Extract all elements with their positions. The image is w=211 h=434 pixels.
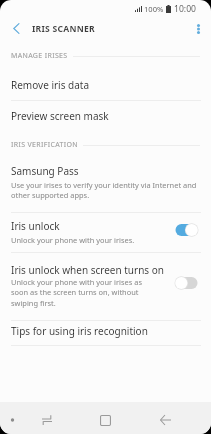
staticText: Preview screen mask: [11, 109, 109, 123]
staticText: MANAGE IRISES: [11, 51, 68, 61]
staticText: Unlock your phone with your irises as so…: [11, 277, 154, 309]
button[interactable]: Navigate up: [0, 16, 32, 41]
button[interactable]: Home: [78, 404, 133, 434]
button[interactable]: Samsung Pass: [0, 157, 211, 209]
staticText: Remove iris data: [11, 78, 90, 92]
staticText: Iris unlock when screen turns on: [11, 263, 164, 277]
button[interactable]: Remove iris data: [0, 70, 211, 100]
button[interactable]: Iris unlock: [0, 212, 211, 252]
staticText: Unlock your phone with your irises.: [11, 235, 135, 245]
staticText: IRIS SCANNER: [32, 23, 95, 35]
staticText: Use your irises to verify your identity …: [11, 180, 200, 201]
staticText: 100%: [144, 4, 164, 14]
button[interactable]: Iris unlock when screen turns on: [0, 252, 211, 320]
button[interactable]: Switch on: [174, 223, 199, 237]
staticText: Samsung Pass: [11, 164, 79, 178]
button[interactable]: Switch off: [174, 276, 199, 290]
button[interactable]: Back: [138, 404, 193, 434]
staticText: 10:00: [174, 3, 196, 15]
staticText: Tips for using iris recognition: [11, 324, 148, 338]
button[interactable]: More options: [185, 16, 211, 41]
button[interactable]: Tips for using iris recognition: [0, 320, 211, 342]
staticText: IRIS VERIFICATION: [11, 140, 78, 150]
button[interactable]: Recents: [19, 404, 74, 434]
button[interactable]: Preview screen mask: [0, 100, 211, 131]
staticText: Iris unlock: [11, 219, 60, 233]
